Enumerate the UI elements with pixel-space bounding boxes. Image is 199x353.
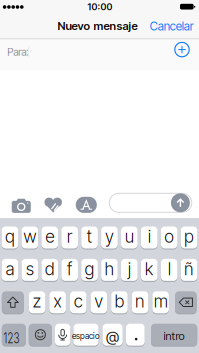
- staticText: @: [106, 328, 119, 345]
- button[interactable]: ñ: [181, 258, 197, 281]
- button[interactable]: o: [161, 226, 177, 249]
- button[interactable]: m: [152, 291, 169, 314]
- staticText: f: [67, 258, 73, 279]
- button[interactable]: t: [81, 226, 98, 249]
- button[interactable]: z: [29, 291, 45, 314]
- button[interactable]: [2, 291, 24, 314]
- staticText: Cancelar: [150, 19, 194, 33]
- button[interactable]: r: [61, 226, 78, 249]
- button[interactable]: [126, 323, 145, 346]
- staticText: k: [145, 258, 154, 279]
- staticText: p: [184, 226, 194, 247]
- staticText: b: [114, 291, 124, 312]
- button[interactable]: @: [102, 323, 123, 346]
- button[interactable]: k: [141, 258, 157, 281]
- button[interactable]: [109, 193, 192, 213]
- staticText: v: [94, 291, 103, 312]
- button[interactable]: x: [49, 291, 66, 314]
- staticText: j: [128, 258, 131, 279]
- button[interactable]: l: [161, 258, 177, 281]
- button[interactable]: v: [91, 291, 107, 314]
- button[interactable]: [175, 291, 197, 314]
- staticText: intro: [164, 329, 185, 343]
- button[interactable]: p: [181, 226, 197, 249]
- button[interactable]: intro: [151, 323, 197, 346]
- button[interactable]: b: [111, 291, 128, 314]
- staticText: y: [105, 226, 114, 247]
- button[interactable]: a: [2, 258, 18, 281]
- button[interactable]: u: [121, 226, 138, 249]
- button[interactable]: y: [101, 226, 118, 249]
- button[interactable]: f: [61, 258, 78, 281]
- staticText: g: [84, 258, 94, 279]
- staticText: e: [45, 226, 54, 247]
- staticText: r: [67, 226, 73, 247]
- button[interactable]: 123: [2, 323, 26, 346]
- button[interactable]: [29, 323, 52, 346]
- staticText: Para:: [7, 45, 29, 58]
- button[interactable]: e: [41, 226, 58, 249]
- button[interactable]: Cancelar: [0, 0, 199, 353]
- staticText: 123: [1, 330, 22, 346]
- staticText: l: [168, 258, 171, 279]
- button[interactable]: n: [132, 291, 148, 314]
- button[interactable]: q: [2, 226, 18, 249]
- staticText: 10:00: [87, 1, 112, 12]
- staticText: Nuevo mensaje: [57, 19, 137, 33]
- button[interactable]: [173, 41, 191, 59]
- button[interactable]: i: [141, 226, 157, 249]
- button[interactable]: c: [70, 291, 86, 314]
- staticText: ñ: [184, 258, 194, 279]
- button[interactable]: h: [101, 258, 118, 281]
- staticText: h: [104, 258, 114, 279]
- staticText: x: [53, 291, 62, 312]
- staticText: z: [32, 291, 41, 312]
- button[interactable]: g: [81, 258, 98, 281]
- staticText: t: [86, 226, 92, 247]
- staticText: espacio: [72, 331, 100, 341]
- button[interactable]: espacio: [73, 323, 98, 346]
- button[interactable]: [11, 199, 31, 213]
- staticText: m: [154, 291, 168, 312]
- button[interactable]: [76, 197, 97, 213]
- staticText: o: [164, 226, 174, 247]
- staticText: d: [45, 258, 55, 279]
- staticText: u: [125, 226, 134, 247]
- button[interactable]: j: [121, 258, 138, 281]
- staticText: c: [74, 291, 83, 312]
- button[interactable]: [44, 197, 62, 213]
- staticText: a: [5, 258, 14, 279]
- button[interactable]: s: [21, 258, 38, 281]
- button[interactable]: w: [21, 226, 38, 249]
- staticText: q: [5, 226, 15, 247]
- staticText: s: [26, 258, 34, 279]
- button[interactable]: [55, 323, 70, 346]
- staticText: w: [23, 226, 36, 247]
- staticText: n: [135, 291, 145, 312]
- button[interactable]: d: [41, 258, 58, 281]
- button[interactable]: [171, 193, 190, 212]
- staticText: i: [148, 226, 151, 247]
